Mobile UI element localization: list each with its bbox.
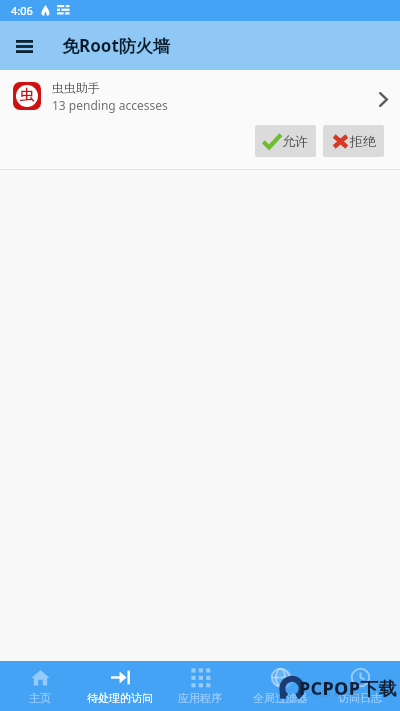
- staticText: 4:06: [11, 3, 33, 18]
- staticText: PCPOP Download: [306, 691, 373, 699]
- button[interactable]: 应用程序: [160, 661, 240, 711]
- staticText: 待处理的访问: [87, 691, 153, 705]
- button[interactable]: 拒绝: [323, 125, 384, 157]
- button[interactable]: Menu: [0, 22, 48, 70]
- staticText: 全局过滤器: [253, 691, 308, 705]
- button[interactable]: 主页: [0, 661, 80, 711]
- button[interactable]: Open app details: [368, 84, 398, 114]
- staticText: 拒绝: [350, 133, 376, 149]
- staticText: 访问日志: [338, 691, 382, 705]
- staticText: 应用程序: [178, 691, 222, 705]
- staticText: 虫: [20, 87, 34, 105]
- button[interactable]: 待处理的访问: [80, 661, 160, 711]
- staticText: PCPOP下载: [299, 676, 397, 701]
- button[interactable]: 访问日志: [320, 661, 400, 711]
- staticText: 虫虫助手: [52, 80, 100, 95]
- button[interactable]: 全局过滤器: [240, 661, 320, 711]
- button[interactable]: 虫: [0, 70, 400, 170]
- staticText: 免Root防火墙: [62, 34, 170, 57]
- staticText: 主页: [29, 691, 51, 705]
- button[interactable]: 允许: [255, 125, 316, 157]
- staticText: 13 pending accesses: [52, 97, 168, 113]
- staticText: 允许: [282, 133, 308, 149]
